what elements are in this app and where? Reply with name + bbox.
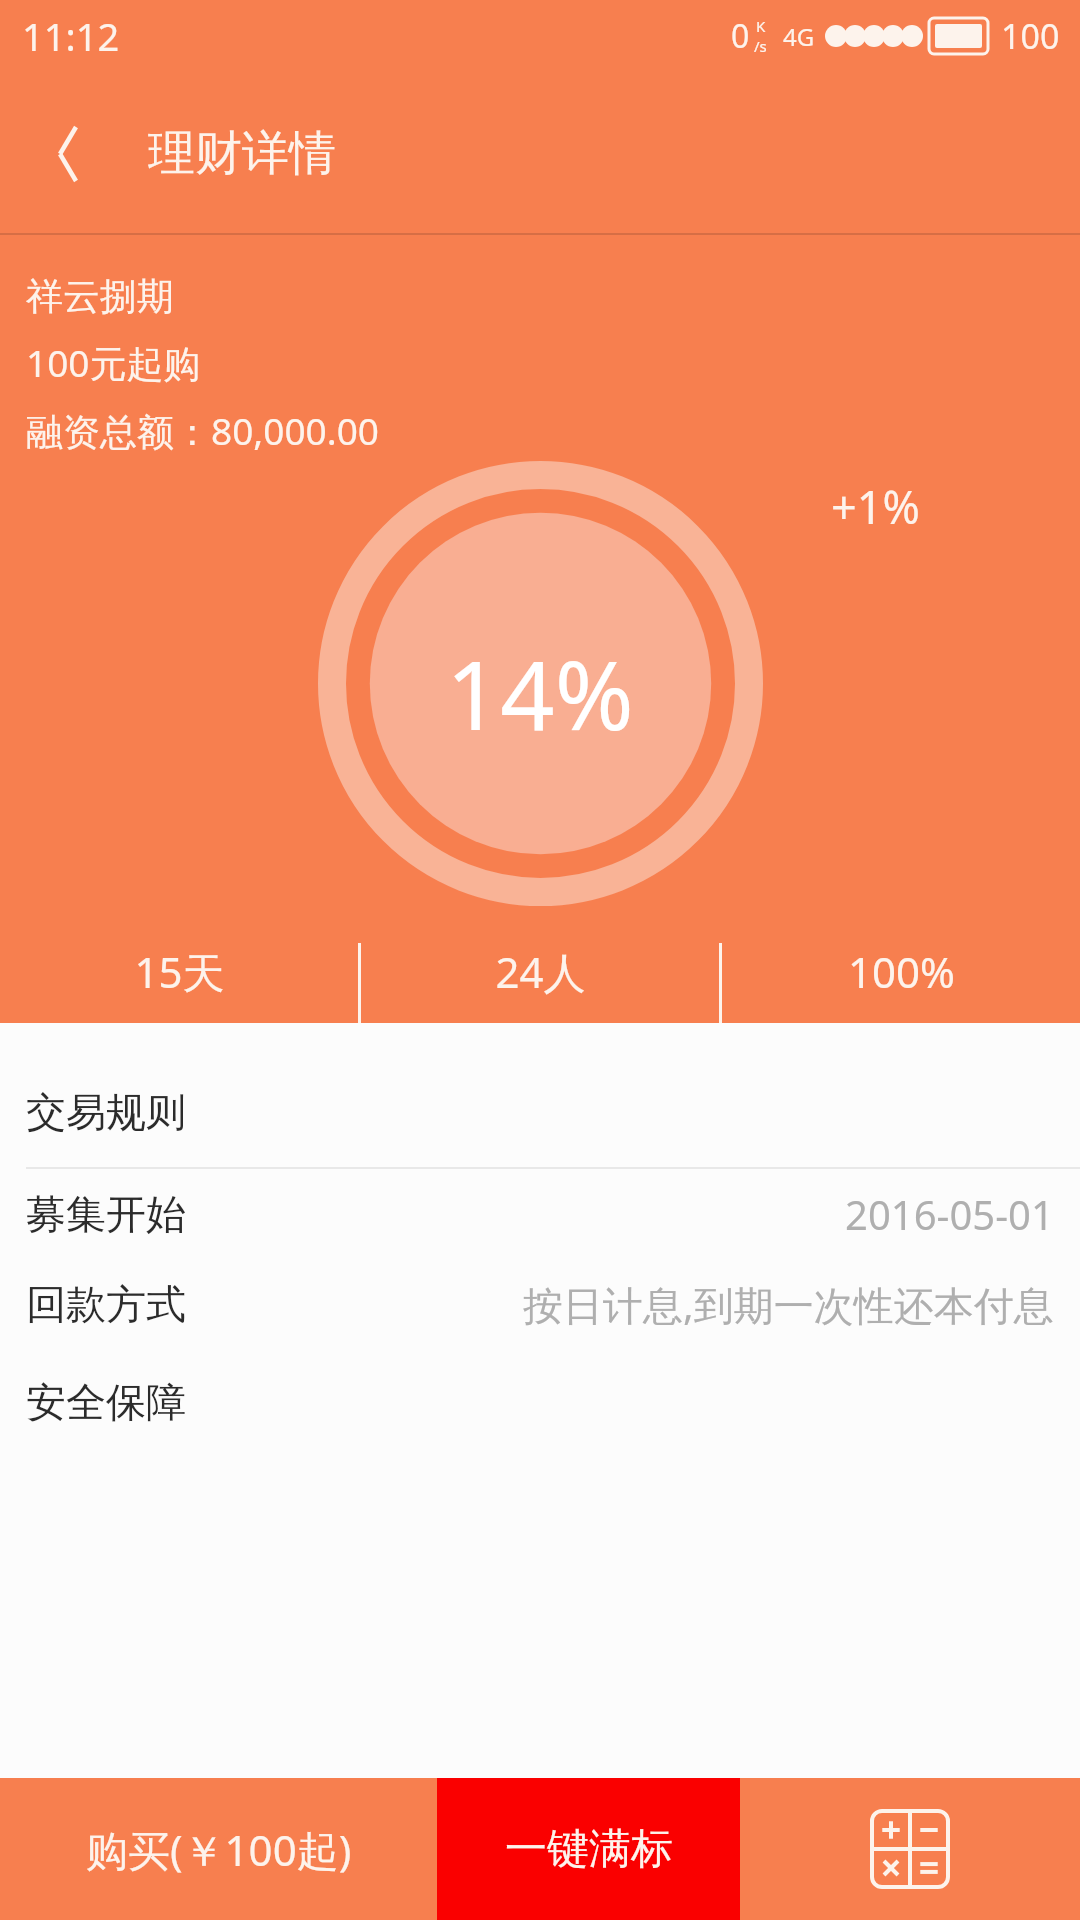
- button[interactable]: Calculator: [740, 1778, 1080, 1920]
- staticText: 祥云捌期: [26, 273, 174, 320]
- button[interactable]: 15天: [0, 943, 358, 1023]
- button[interactable]: 一键满标: [437, 1778, 740, 1920]
- button[interactable]: 募集开始: [0, 1169, 1080, 1259]
- button[interactable]: 交易规则: [0, 1057, 1080, 1167]
- button[interactable]: 回款方式: [0, 1259, 1080, 1349]
- staticText: 购买(￥100起): [86, 1821, 352, 1878]
- staticText: 24人: [495, 943, 586, 1000]
- staticText: 一键满标: [505, 1823, 673, 1876]
- staticText: 募集开始: [26, 1189, 186, 1239]
- staticText: 按日计息,到期一次性还本付息: [523, 1277, 1054, 1332]
- button[interactable]: 24人: [361, 943, 719, 1023]
- staticText: 回款方式: [26, 1279, 186, 1329]
- staticText: 100%: [848, 943, 955, 1000]
- staticText: 14%: [446, 628, 634, 757]
- staticText: 安全保障: [26, 1377, 186, 1427]
- staticText: 100: [1001, 13, 1060, 59]
- button[interactable]: 100%: [722, 943, 1080, 1023]
- button[interactable]: Back: [20, 106, 116, 202]
- button[interactable]: 安全保障: [0, 1349, 1080, 1454]
- staticText: /s: [754, 36, 767, 56]
- staticText: 交易规则: [26, 1087, 186, 1137]
- staticText: K: [756, 16, 766, 36]
- staticText: 0: [731, 14, 750, 58]
- staticText: 融资总额：80,000.00: [26, 405, 379, 456]
- staticText: 2016-05-01: [845, 1187, 1054, 1241]
- staticText: +1%: [831, 476, 920, 537]
- button[interactable]: 购买(￥100起): [0, 1778, 437, 1920]
- staticText: 4G: [783, 20, 815, 53]
- staticText: 理财详情: [148, 124, 336, 183]
- staticText: 15天: [134, 943, 225, 1000]
- staticText: 100元起购: [26, 337, 201, 388]
- staticText: 11:12: [22, 10, 120, 62]
